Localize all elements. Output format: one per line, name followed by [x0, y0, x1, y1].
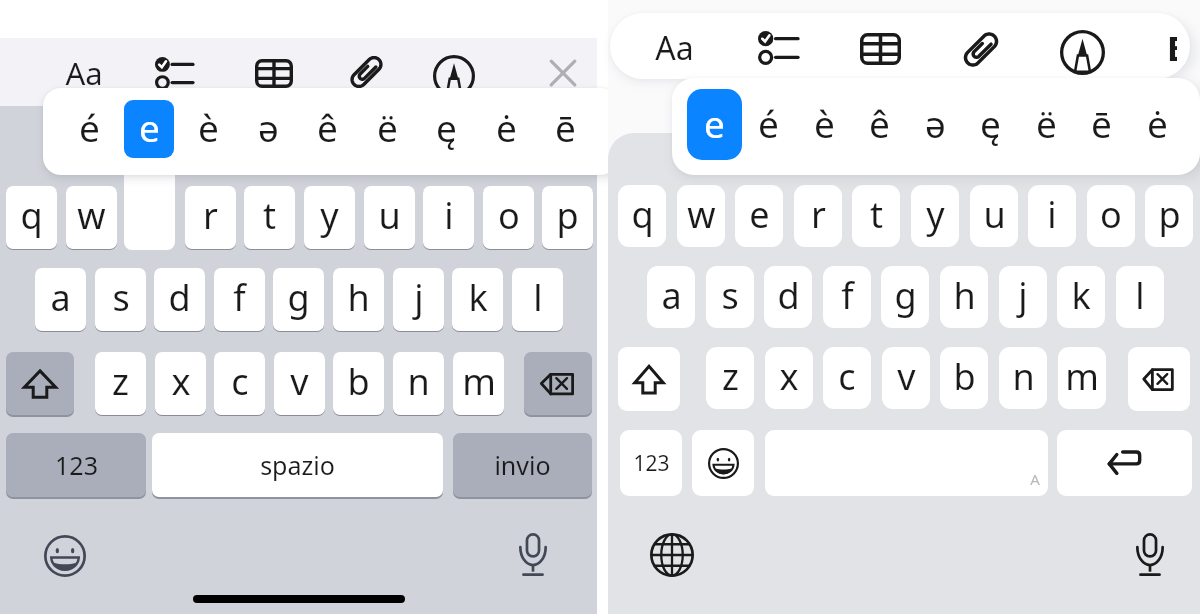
staticText: i	[1047, 190, 1057, 239]
button[interactable]: Close	[548, 58, 578, 88]
button[interactable]: Backspace	[1128, 347, 1190, 411]
button[interactable]: Table	[248, 48, 300, 98]
button[interactable]: x	[765, 347, 813, 409]
button[interactable]: ē	[1075, 95, 1127, 155]
button[interactable]: ë	[362, 100, 412, 158]
button[interactable]: Backspace	[524, 352, 592, 415]
button[interactable]: i	[423, 186, 474, 249]
button[interactable]: y	[911, 185, 959, 247]
button[interactable]: h	[940, 266, 988, 328]
button[interactable]: é	[64, 100, 114, 158]
button[interactable]: m	[453, 352, 504, 415]
button[interactable]: a	[647, 266, 695, 328]
button[interactable]: g	[881, 266, 929, 328]
button[interactable]	[765, 430, 1048, 496]
button[interactable]: f	[214, 268, 265, 331]
button[interactable]: 123	[6, 433, 146, 497]
button[interactable]: q	[6, 186, 57, 249]
button[interactable]: b	[333, 352, 384, 415]
button[interactable]: a	[35, 268, 86, 331]
button[interactable]: spazio	[152, 433, 443, 497]
button[interactable]: Shift	[618, 347, 680, 411]
button[interactable]: invio	[453, 433, 592, 497]
button[interactable]: e	[735, 185, 783, 247]
button[interactable]: u	[970, 185, 1018, 247]
button[interactable]: Checklist	[148, 48, 200, 98]
button[interactable]: z	[95, 352, 146, 415]
button[interactable]: k	[452, 268, 503, 331]
button[interactable]: s	[706, 266, 754, 328]
button[interactable]: t	[244, 186, 295, 249]
button[interactable]: Aa	[58, 52, 110, 94]
button[interactable]: e	[124, 100, 174, 158]
button[interactable]: n	[393, 352, 444, 415]
button[interactable]: o	[483, 186, 534, 249]
button[interactable]: w	[677, 185, 725, 247]
button[interactable]: s	[95, 268, 146, 331]
button[interactable]: Dictation	[505, 526, 561, 582]
button[interactable]: ę	[421, 100, 471, 158]
button[interactable]: Shift	[6, 352, 74, 415]
button[interactable]: ə	[909, 95, 961, 155]
button[interactable]: Checklist	[752, 23, 804, 73]
staticText: ę	[436, 102, 457, 152]
button[interactable]: Table	[854, 24, 906, 74]
button[interactable]: l	[512, 268, 563, 331]
button[interactable]: g	[273, 268, 324, 331]
button[interactable]: ę	[964, 95, 1016, 155]
button[interactable]: m	[1058, 347, 1106, 409]
button[interactable]: 123	[620, 430, 682, 496]
button[interactable]: Dictation	[1122, 526, 1178, 582]
button[interactable]: x	[155, 352, 206, 415]
button[interactable]: è	[798, 95, 850, 155]
button[interactable]: Change keyboard	[644, 527, 700, 583]
button[interactable]: r	[185, 186, 236, 249]
button[interactable]: Aa	[648, 26, 700, 68]
button[interactable]: Emoji	[692, 430, 754, 496]
button[interactable]: i	[1028, 185, 1076, 247]
button[interactable]: w	[66, 186, 117, 249]
button[interactable]: y	[304, 186, 355, 249]
button[interactable]: ë	[1020, 95, 1072, 155]
button[interactable]: j	[393, 268, 444, 331]
button[interactable]: b	[940, 347, 988, 409]
button[interactable]: Attach	[957, 23, 1005, 75]
button[interactable]: p	[542, 186, 593, 249]
button[interactable]: u	[364, 186, 415, 249]
button[interactable]: r	[794, 185, 842, 247]
button[interactable]: Markup	[1058, 26, 1106, 78]
button[interactable]: Emoji	[37, 528, 93, 584]
button[interactable]: ė	[1131, 95, 1183, 155]
button[interactable]: ê	[853, 95, 905, 155]
button[interactable]: ė	[481, 100, 531, 158]
button[interactable]: n	[999, 347, 1047, 409]
button[interactable]: z	[706, 347, 754, 409]
button[interactable]: c	[214, 352, 265, 415]
staticText: y	[926, 190, 945, 239]
button[interactable]: é	[742, 95, 794, 155]
button[interactable]: p	[1145, 185, 1193, 247]
button[interactable]: c	[823, 347, 871, 409]
button[interactable]: Attach	[342, 47, 390, 97]
button[interactable]: B	[1158, 25, 1177, 67]
button[interactable]: ə	[243, 100, 293, 158]
button[interactable]: v	[882, 347, 930, 409]
button[interactable]: Return	[1057, 430, 1192, 496]
button[interactable]: t	[852, 185, 900, 247]
button[interactable]: è	[183, 100, 233, 158]
button[interactable]: k	[1057, 266, 1105, 328]
button[interactable]: e	[687, 89, 742, 160]
button[interactable]: j	[999, 266, 1047, 328]
button[interactable]: q	[618, 185, 666, 247]
button[interactable]: l	[1116, 266, 1164, 328]
button[interactable]: d	[764, 266, 812, 328]
button[interactable]: d	[154, 268, 205, 331]
button[interactable]: f	[823, 266, 871, 328]
button[interactable]: h	[333, 268, 384, 331]
button[interactable]: v	[274, 352, 325, 415]
button[interactable]: o	[1087, 185, 1135, 247]
button[interactable]: ē	[540, 100, 590, 158]
button[interactable]: Markup	[430, 51, 478, 101]
staticText: é	[758, 98, 779, 148]
button[interactable]: ê	[302, 100, 352, 158]
